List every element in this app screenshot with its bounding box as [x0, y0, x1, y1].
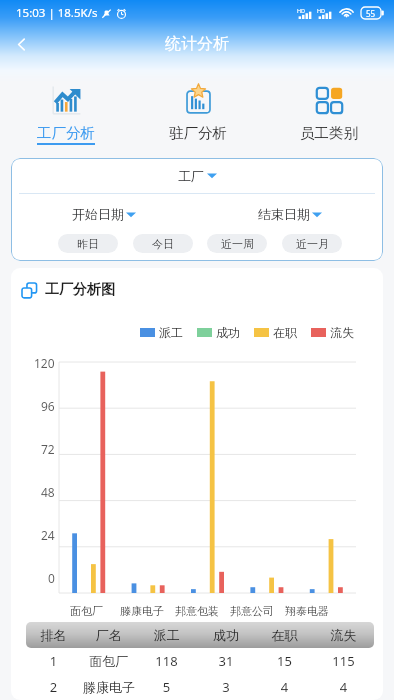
staticText: 55	[366, 8, 376, 19]
staticText: 厂名	[81, 627, 137, 643]
staticText: 工厂分析图	[45, 281, 115, 299]
staticText: 成功	[216, 325, 240, 340]
staticText: 驻厂分析	[169, 124, 227, 142]
staticText: 滕康电子	[120, 604, 164, 618]
staticText: 工厂分析	[37, 124, 95, 142]
button[interactable]: 驻厂分析	[157, 85, 239, 145]
staticText: 近一周	[221, 237, 254, 251]
button[interactable]: 员工类别	[288, 85, 370, 145]
button[interactable]: 开始日期	[11, 194, 197, 234]
staticText: 昨日	[77, 237, 99, 251]
button[interactable]: 结束日期	[197, 194, 383, 234]
staticText: 3	[196, 678, 256, 696]
staticText: 邦意包装	[175, 604, 219, 618]
button[interactable]: 昨日	[58, 234, 118, 253]
staticText: 邦意公司	[230, 604, 274, 618]
staticText: 31	[196, 652, 256, 670]
staticText: 15:03 | 18.5K/s	[16, 5, 98, 21]
staticText: 115	[313, 652, 374, 670]
button[interactable]: 今日	[133, 234, 193, 253]
button[interactable]: 工厂分析	[25, 85, 107, 145]
staticText: 成功	[196, 627, 256, 643]
staticText: 流失	[330, 325, 354, 340]
staticText: 员工类别	[300, 124, 358, 142]
staticText: 24	[41, 527, 55, 541]
staticText: 结束日期	[258, 206, 310, 222]
staticText: 面包厂	[81, 653, 137, 669]
button[interactable]: Back	[0, 26, 42, 62]
staticText: 翔泰电器	[285, 604, 329, 618]
button[interactable]: 工厂	[11, 158, 383, 193]
staticText: 派工	[159, 325, 183, 340]
staticText: 1	[26, 652, 81, 670]
staticText: 0	[48, 570, 55, 584]
staticText: HD	[317, 7, 326, 14]
staticText: 流失	[313, 627, 374, 643]
button[interactable]: 近一周	[207, 234, 267, 253]
staticText: HD	[297, 7, 306, 14]
staticText: 在职	[273, 325, 297, 340]
staticText: 72	[41, 441, 55, 455]
staticText: 2	[26, 678, 81, 696]
staticText: 120	[34, 355, 55, 369]
staticText: 滕康电子	[81, 679, 137, 695]
staticText: 派工	[137, 627, 196, 643]
button[interactable]: 近一月	[282, 234, 342, 253]
staticText: 面包厂	[70, 604, 103, 618]
staticText: 4	[313, 678, 374, 696]
staticText: 118	[137, 652, 196, 670]
staticText: 统计分析	[165, 34, 229, 54]
staticText: 48	[41, 484, 55, 498]
staticText: 开始日期	[72, 206, 124, 222]
staticText: 15	[256, 652, 313, 670]
staticText: 4	[256, 678, 313, 696]
staticText: 工厂	[178, 168, 204, 184]
staticText: 5	[137, 678, 196, 696]
staticText: 今日	[152, 237, 174, 251]
staticText: 排名	[26, 627, 81, 643]
staticText: 近一月	[296, 237, 329, 251]
staticText: 96	[41, 398, 55, 412]
staticText: 在职	[256, 627, 313, 643]
